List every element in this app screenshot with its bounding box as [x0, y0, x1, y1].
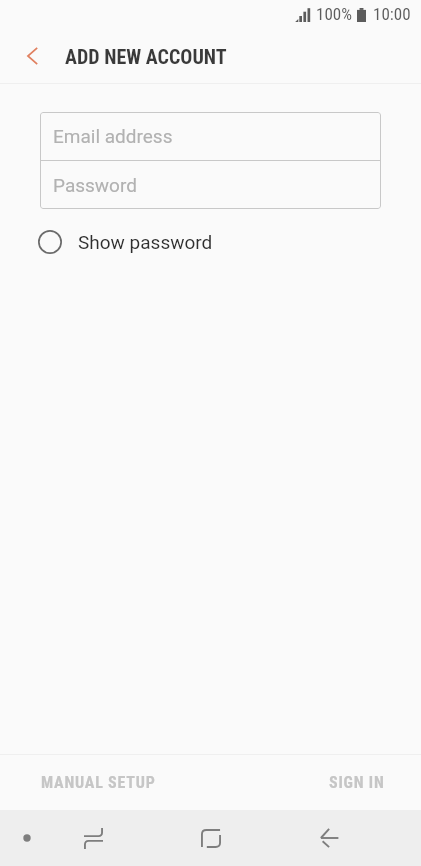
button[interactable]: SIGN IN	[210, 755, 421, 810]
staticText: Show password	[78, 231, 213, 253]
button[interactable]: Back	[302, 811, 356, 865]
button[interactable]: Email address	[40, 112, 381, 160]
staticText: MANUAL SETUP	[41, 773, 156, 792]
staticText: 10:00	[373, 4, 411, 24]
button[interactable]: Navigate up	[5, 28, 60, 83]
staticText: ADD NEW ACCOUNT	[65, 45, 227, 68]
staticText: Email address	[53, 125, 173, 147]
button[interactable]: MANUAL SETUP	[0, 755, 210, 810]
button[interactable]: Show buttons	[5, 816, 49, 860]
staticText: 100%	[316, 4, 352, 24]
staticText: Password	[53, 174, 137, 196]
button[interactable]: Recents	[66, 811, 120, 865]
button[interactable]: Home	[184, 811, 238, 865]
button[interactable]: Show password	[0, 221, 421, 263]
staticText: SIGN IN	[329, 773, 385, 792]
button[interactable]: Password	[40, 161, 381, 209]
